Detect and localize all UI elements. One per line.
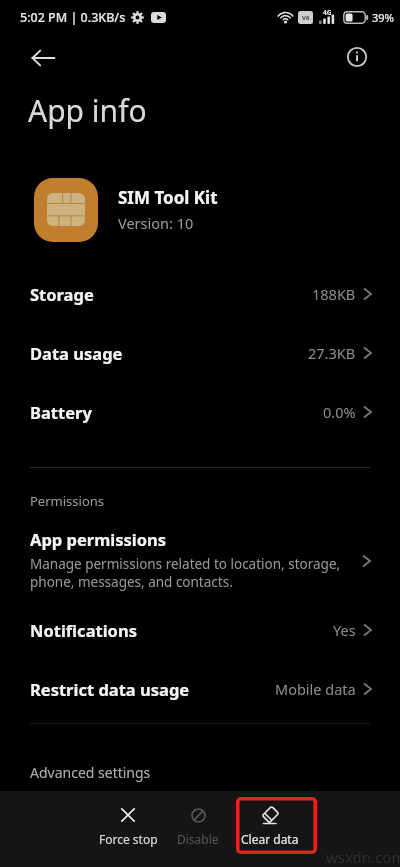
staticText: Permissions — [30, 492, 105, 510]
button[interactable]: Disable — [172, 805, 224, 847]
staticText: Disable — [177, 831, 219, 847]
staticText: Restrict data usage — [30, 678, 190, 700]
button[interactable]: Force stop — [95, 805, 161, 847]
button[interactable]: Data usage — [0, 323, 400, 382]
staticText: Manage permissions related to location, … — [30, 555, 341, 591]
button[interactable]: Storage — [0, 264, 400, 323]
staticText: wsxdn.com — [326, 847, 400, 867]
staticText: 4G — [323, 8, 332, 17]
staticText: Yes — [333, 620, 356, 640]
button[interactable]: App permissions — [0, 522, 400, 600]
staticText: Mobile data — [275, 679, 356, 699]
staticText: Clear data — [241, 831, 299, 847]
staticText: SIM Tool Kit — [118, 186, 218, 209]
staticText: Notifications — [30, 619, 137, 641]
staticText: Version: 10 — [118, 213, 194, 233]
button[interactable]: Notifications — [0, 600, 400, 659]
button[interactable]: Clear data — [238, 805, 302, 847]
button[interactable]: Restrict data usage — [0, 659, 400, 718]
staticText: Battery — [30, 401, 92, 423]
staticText: App permissions — [30, 528, 167, 550]
button[interactable]: Battery — [0, 382, 400, 441]
button[interactable] — [22, 44, 64, 72]
staticText: 39% — [372, 10, 394, 25]
staticText: 188KB — [312, 284, 356, 304]
staticText: 27.3KB — [308, 343, 356, 363]
button[interactable] — [343, 43, 371, 71]
staticText: V6 — [302, 14, 310, 22]
staticText: App info — [28, 90, 147, 131]
staticText: Force stop — [99, 831, 158, 847]
staticText: Storage — [30, 283, 94, 305]
staticText: Data usage — [30, 342, 123, 364]
staticText: Advanced settings — [30, 763, 151, 782]
staticText: 5:02 PM | 0.3KB/s — [20, 9, 126, 26]
staticText: 0.0% — [323, 402, 356, 422]
